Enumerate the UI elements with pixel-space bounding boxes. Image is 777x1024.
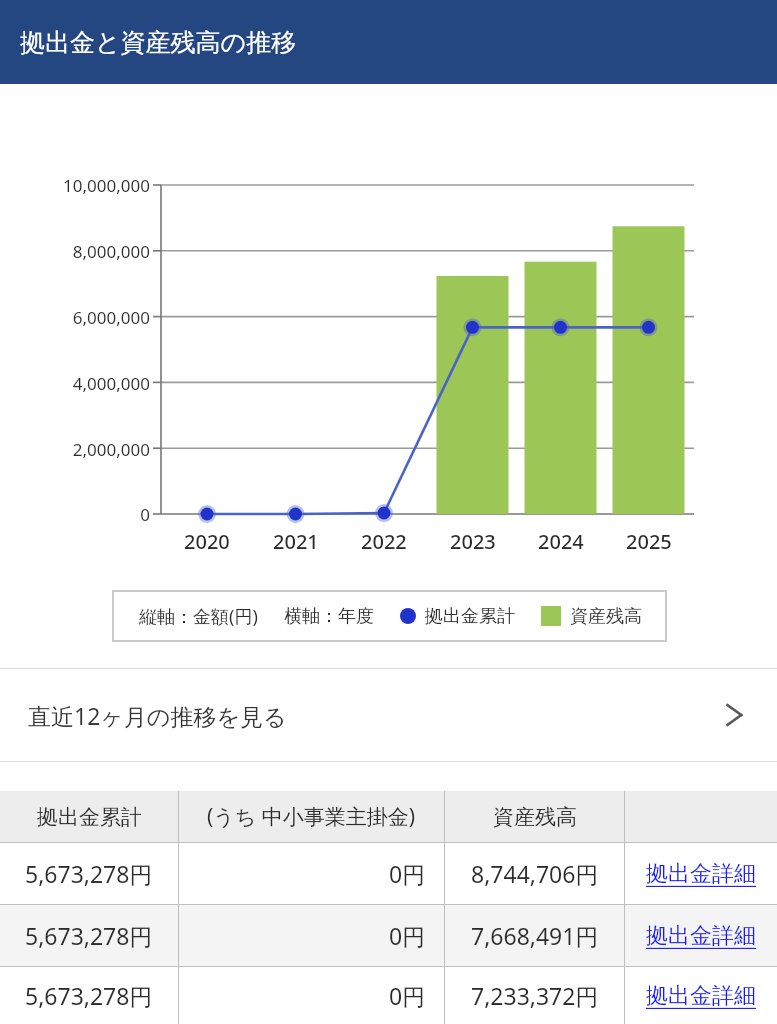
- staticText: 拠出金と資産残高の推移: [20, 27, 297, 58]
- staticText: 2020: [184, 528, 230, 555]
- staticText: 5,673,278円: [25, 858, 153, 889]
- staticText: 2023: [450, 528, 496, 555]
- button[interactable]: 拠出金詳細: [625, 843, 777, 904]
- staticText: 2021: [273, 528, 319, 555]
- staticText: 0: [140, 503, 150, 526]
- button[interactable]: 拠出金詳細: [625, 905, 777, 966]
- staticText: 6,000,000: [72, 306, 150, 329]
- staticText: 7,668,491円: [471, 920, 599, 951]
- staticText: 2022: [361, 528, 407, 555]
- staticText: 資産残高: [570, 605, 642, 628]
- other: Open: [721, 702, 747, 728]
- staticText: 5,673,278円: [25, 920, 153, 951]
- staticText: 5,673,278円: [25, 980, 153, 1011]
- staticText: 4,000,000: [72, 372, 150, 395]
- staticText: (うち 中小事業主掛金): [207, 802, 416, 831]
- staticText: 拠出金詳細: [646, 922, 756, 950]
- button[interactable]: 直近12ヶ月の推移を見る: [0, 669, 777, 761]
- staticText: 資産残高: [493, 804, 577, 830]
- staticText: 2024: [538, 528, 584, 555]
- staticText: 拠出金詳細: [646, 860, 756, 888]
- staticText: 8,744,706円: [471, 858, 599, 889]
- staticText: 拠出金累計: [37, 804, 142, 830]
- staticText: 横軸：年度: [284, 605, 374, 628]
- staticText: 0円: [389, 920, 426, 951]
- staticText: 2025: [626, 528, 672, 555]
- button[interactable]: 拠出金詳細: [625, 967, 777, 1024]
- staticText: 8,000,000: [72, 240, 150, 263]
- staticText: 7,233,372円: [471, 980, 599, 1011]
- staticText: 拠出金累計: [425, 605, 515, 628]
- staticText: 直近12ヶ月の推移を見る: [28, 700, 287, 731]
- button[interactable]: 拠出金と資産残高の推移: [0, 0, 777, 84]
- staticText: 縦軸：金額(円): [139, 604, 258, 629]
- staticText: 2,000,000: [72, 438, 150, 461]
- staticText: 拠出金詳細: [646, 982, 756, 1010]
- staticText: 0円: [389, 858, 426, 889]
- staticText: 10,000,000: [63, 174, 150, 197]
- staticText: 0円: [389, 980, 426, 1011]
